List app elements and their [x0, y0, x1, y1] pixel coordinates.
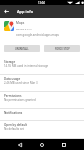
staticText: com.google.android.apps.maps — [16, 33, 60, 37]
button[interactable]: Storage — [0, 58, 84, 75]
staticText: Data usage — [4, 77, 21, 81]
button[interactable]: Data usage — [0, 75, 84, 92]
staticText: FORCE STOP — [55, 47, 70, 50]
button[interactable]: UNINSTALL — [4, 45, 40, 52]
staticText: version 9.77.2 — [16, 27, 32, 30]
staticText: UNINSTALL — [15, 47, 29, 50]
staticText: Storage — [4, 60, 16, 64]
staticText: 14.55 MB used in internal storage — [4, 64, 49, 68]
staticText: 13:04 — [38, 1, 45, 5]
button[interactable]: Home — [36, 139, 48, 150]
button[interactable]: Permissions — [0, 92, 84, 109]
staticText: 2.46 MB used since Mar 3 — [4, 81, 38, 85]
button[interactable]: Back — [14, 139, 26, 150]
button[interactable]: Open by default — [0, 121, 84, 139]
staticText: Open by default — [4, 123, 27, 127]
button[interactable]: Notifications — [0, 109, 84, 121]
staticText: Permissions — [4, 94, 22, 98]
staticText: App info — [17, 9, 34, 14]
staticText: Notifications — [4, 111, 23, 115]
staticText: Maps — [16, 21, 25, 25]
button[interactable]: Back — [0, 5, 13, 18]
button[interactable]: Recent apps — [58, 139, 70, 150]
staticText: No permissions granted — [4, 98, 36, 102]
button[interactable]: FORCE STOP — [44, 45, 80, 52]
staticText: No defaults set — [4, 127, 24, 131]
